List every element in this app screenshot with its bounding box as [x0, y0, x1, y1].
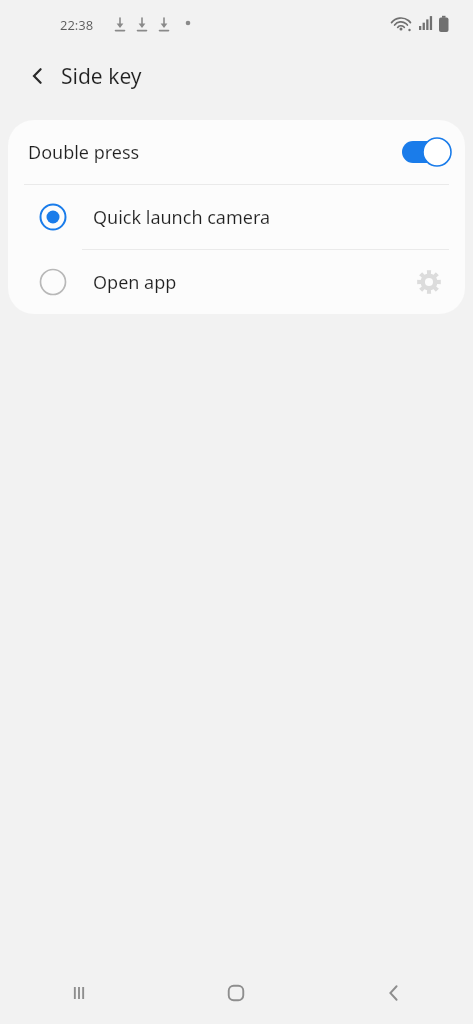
staticText: Double press: [28, 140, 140, 165]
button[interactable]: Quick launch camera: [8, 185, 465, 249]
button[interactable]: Recent apps: [0, 962, 157, 1024]
button[interactable]: Double press toggle: [395, 132, 451, 172]
button[interactable]: Open app settings: [405, 258, 453, 306]
staticText: Open app: [93, 270, 177, 295]
button[interactable]: Back: [315, 962, 473, 1024]
button[interactable]: Home: [157, 962, 315, 1024]
button[interactable]: Double press: [8, 120, 465, 184]
staticText: Side key: [61, 62, 142, 91]
button[interactable]: Back: [16, 54, 60, 98]
staticText: Quick launch camera: [93, 205, 271, 230]
button[interactable]: Open app: [8, 250, 465, 314]
staticText: 22:38: [60, 16, 94, 34]
